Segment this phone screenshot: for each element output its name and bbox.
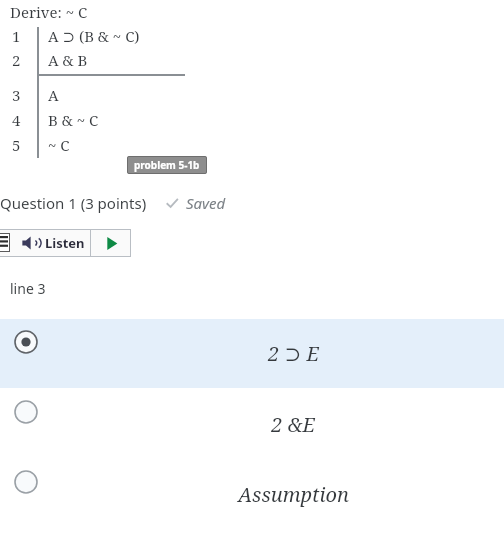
staticText: A bbox=[48, 85, 59, 105]
staticText: Question 1 (3 points) bbox=[0, 193, 147, 213]
staticText: 4 bbox=[12, 110, 21, 130]
staticText: A & B bbox=[48, 50, 88, 70]
staticText: 5 bbox=[12, 135, 21, 155]
staticText: line 3 bbox=[10, 279, 46, 298]
staticText: Derive: ~ C bbox=[10, 2, 88, 22]
button[interactable]: 2 ⊃ E bbox=[0, 319, 504, 388]
staticText: ~ C bbox=[48, 135, 70, 155]
staticText: 2 &E bbox=[271, 411, 315, 438]
staticText: B & ~ C bbox=[48, 110, 99, 130]
staticText: Assumption bbox=[238, 481, 349, 508]
button[interactable]: Menu bbox=[0, 233, 10, 252]
button[interactable]: Listen bbox=[22, 229, 85, 257]
staticText: problem 5-1b bbox=[134, 158, 200, 172]
staticText: 3 bbox=[12, 85, 21, 105]
staticText: 2 ⊃ E bbox=[268, 340, 319, 367]
button[interactable]: Play bbox=[91, 229, 131, 257]
button[interactable]: 2 &E bbox=[0, 389, 504, 459]
staticText: Saved bbox=[186, 193, 226, 213]
staticText: 1 bbox=[12, 26, 21, 46]
staticText: A ⊃ (B & ~ C) bbox=[48, 26, 140, 46]
button[interactable]: Assumption bbox=[0, 459, 504, 529]
staticText: Listen bbox=[45, 234, 85, 252]
staticText: 2 bbox=[12, 50, 21, 70]
